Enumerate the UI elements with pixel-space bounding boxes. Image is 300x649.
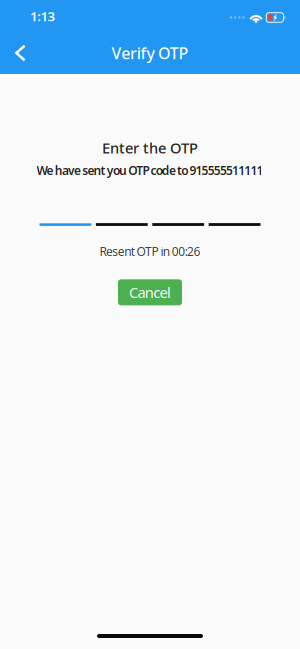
staticText: Verify OTP (111, 42, 189, 64)
staticText: Cancel (129, 283, 171, 302)
staticText: 1:13 (30, 7, 56, 25)
staticText: Resent OTP in 00:26 (99, 243, 200, 259)
staticText: We have sent you OTP code to 91555551111… (36, 162, 263, 178)
staticText: Enter the OTP (102, 138, 198, 157)
button[interactable]: Cancel (118, 279, 182, 305)
button[interactable]: Back (0, 36, 36, 74)
